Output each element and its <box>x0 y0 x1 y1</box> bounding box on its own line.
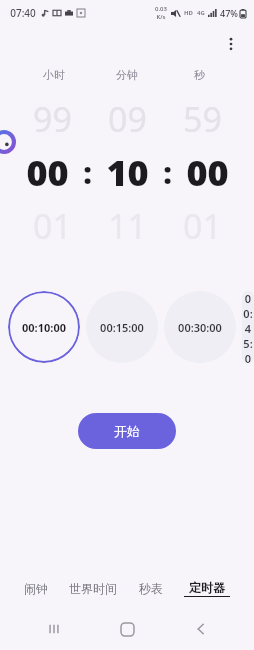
staticText: 00 <box>186 148 229 197</box>
staticText: K/s <box>156 13 166 21</box>
button[interactable]: 定时器 <box>179 577 235 600</box>
staticText: 11 <box>108 203 147 249</box>
staticText: 开始 <box>114 423 140 439</box>
button[interactable]: 00:15:00 <box>86 291 158 363</box>
button[interactable]: 00:45:00 <box>242 291 254 363</box>
staticText: 01 <box>33 203 72 249</box>
staticText: 09 <box>108 96 147 142</box>
staticText: 99 <box>33 96 72 142</box>
staticText: 秒 <box>194 68 205 82</box>
button[interactable]: 闹钟 <box>19 578 53 599</box>
staticText: 定时器 <box>189 580 225 595</box>
staticText: HD <box>184 9 193 17</box>
staticText: 00:30:00 <box>178 320 222 335</box>
button[interactable]: 00:10:00 <box>8 291 80 363</box>
staticText: 00:15:00 <box>100 320 144 335</box>
button[interactable]: Home <box>107 609 147 649</box>
button[interactable]: Back <box>181 609 221 649</box>
staticText: 01 <box>183 203 222 249</box>
button[interactable]: 00:30:00 <box>164 291 236 363</box>
staticText: 闹钟 <box>24 581 48 596</box>
staticText: 10 <box>106 148 149 197</box>
staticText: 00:10:00 <box>22 320 66 335</box>
button[interactable]: More options <box>214 27 248 61</box>
staticText: 秒表 <box>139 581 163 596</box>
button[interactable]: Recent apps <box>34 609 74 649</box>
staticText: 0.03 <box>155 5 167 13</box>
staticText: 00 <box>26 148 69 197</box>
staticText: 07:40 <box>10 6 36 20</box>
staticText: 59 <box>183 96 222 142</box>
button[interactable]: 秒表 <box>134 578 168 599</box>
staticText: : <box>163 152 172 193</box>
button[interactable]: 世界时间 <box>64 578 122 599</box>
other: Timer indicator <box>0 130 16 154</box>
staticText: 00:45:00 <box>242 291 254 363</box>
staticText: : <box>83 152 92 193</box>
staticText: 小时 <box>43 68 65 82</box>
staticText: 分钟 <box>116 68 138 82</box>
button[interactable]: 开始 <box>78 413 176 449</box>
staticText: 47% <box>220 7 238 19</box>
staticText: 世界时间 <box>69 581 117 596</box>
staticText: 4G <box>197 9 205 17</box>
